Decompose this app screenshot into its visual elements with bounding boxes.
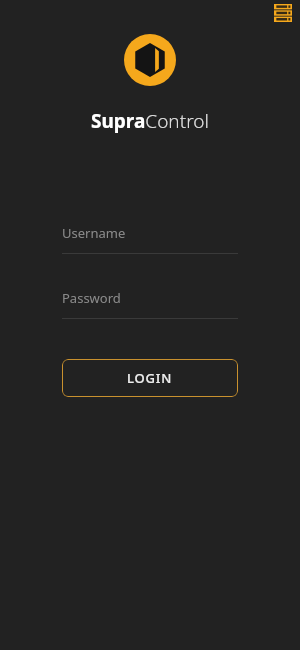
staticText: Username	[62, 224, 126, 242]
staticText: Password	[62, 289, 121, 307]
staticText: SupraControl	[91, 108, 209, 134]
button[interactable]: Password	[62, 289, 238, 319]
button[interactable]: Server settings	[272, 2, 294, 24]
button[interactable]: Username	[62, 224, 238, 254]
staticText: LOGIN	[127, 369, 173, 387]
button[interactable]: LOGIN	[62, 359, 238, 397]
